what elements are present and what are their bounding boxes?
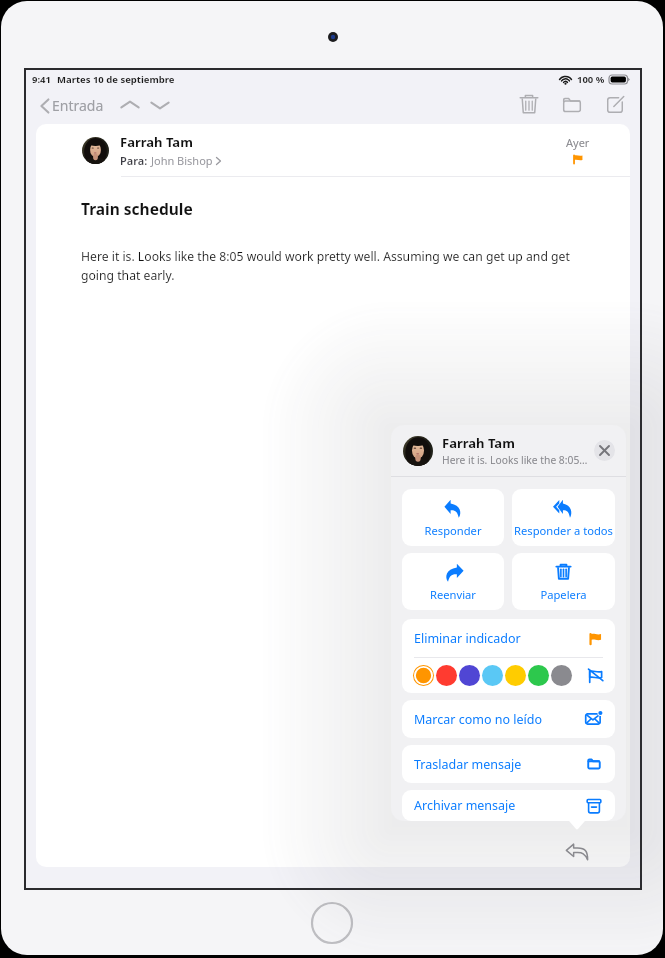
staticText: Papelera: [540, 587, 587, 602]
staticText: Ayer: [566, 135, 590, 150]
staticText: Responder: [424, 523, 482, 538]
button[interactable]: Eliminar indicador: [402, 619, 615, 657]
staticText: Here it is. Looks like the 8:05 would wo…: [81, 248, 573, 283]
button[interactable]: Redactar: [602, 92, 628, 118]
staticText: Train schedule: [81, 198, 193, 219]
staticText: Archivar mensaje: [414, 797, 516, 814]
button[interactable]: Responder a todos: [512, 489, 615, 546]
button[interactable]: Mensaje siguiente: [148, 93, 172, 117]
button[interactable]: Archivar mensaje: [402, 790, 615, 821]
staticText: Reenviar: [430, 587, 476, 602]
staticText: Here it is. Looks like the 8:05…: [442, 453, 588, 467]
button[interactable]: Reenviar: [402, 553, 504, 610]
staticText: Entrada: [52, 96, 104, 115]
button[interactable]: Responder: [402, 489, 504, 546]
button[interactable]: Trasladar mensaje: [402, 745, 615, 783]
button[interactable]: Responder: [563, 838, 591, 866]
staticText: Responder a todos: [514, 523, 613, 538]
staticText: Farrah Tam: [442, 434, 515, 452]
staticText: John Bishop: [151, 153, 213, 168]
button[interactable]: Entrada: [38, 92, 106, 119]
button[interactable]: Cerrar: [594, 440, 615, 461]
staticText: Trasladar mensaje: [414, 756, 522, 773]
staticText: Farrah Tam: [120, 133, 193, 151]
staticText: 9:41: [32, 73, 51, 86]
button[interactable]: Color 2: [459, 665, 480, 686]
button[interactable]: Color 0: [413, 665, 434, 686]
button[interactable]: Mover a carpeta: [559, 92, 585, 118]
button[interactable]: Color 6: [551, 665, 572, 686]
button[interactable]: Mensaje anterior: [118, 93, 142, 117]
button[interactable]: Color 5: [528, 665, 549, 686]
staticText: Eliminar indicador: [414, 630, 521, 647]
staticText: Marcar como no leído: [414, 711, 543, 728]
button[interactable]: Color 3: [482, 665, 503, 686]
button[interactable]: Color 4: [505, 665, 526, 686]
button[interactable]: Sin indicador: [587, 667, 604, 684]
button[interactable]: Eliminar: [516, 92, 542, 118]
button[interactable]: Papelera: [512, 553, 615, 610]
button[interactable]: Marcar como no leído: [402, 700, 615, 738]
button[interactable]: Color 1: [436, 665, 457, 686]
staticText: Para:: [120, 153, 151, 168]
staticText: Martes 10 de septiembre: [57, 73, 175, 86]
staticText: 100 %: [577, 73, 605, 86]
